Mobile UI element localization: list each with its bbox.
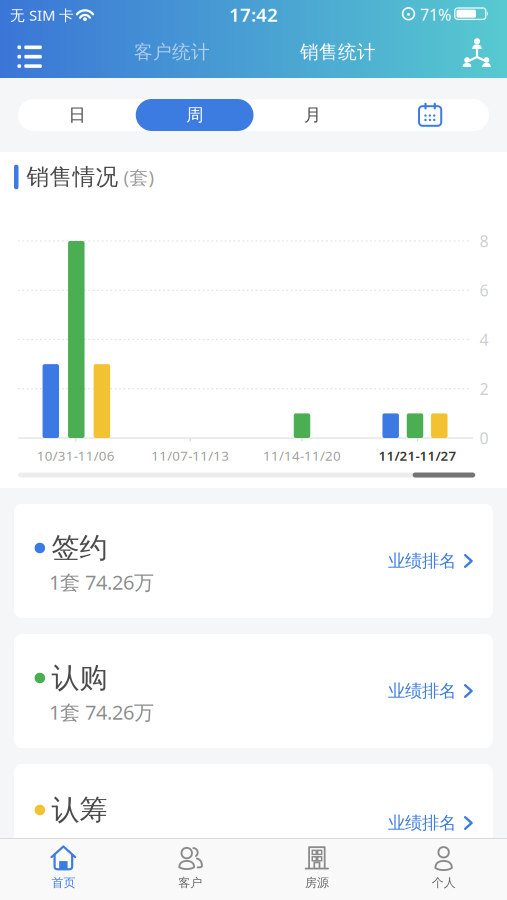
staticText: 客户统计 — [134, 40, 210, 63]
button[interactable]: 菜单 — [13, 39, 47, 71]
button[interactable]: 首页 — [0, 839, 127, 900]
button[interactable]: 选择日期 — [371, 99, 489, 131]
staticText: 周 — [186, 104, 203, 126]
button[interactable]: 业绩排名 — [313, 803, 473, 843]
staticText: 个人 — [432, 875, 456, 890]
button[interactable]: 房源 — [253, 839, 380, 900]
staticText: 1套 74.26万 — [49, 699, 154, 725]
staticText: 8 — [479, 230, 488, 252]
staticText: 17:42 — [229, 2, 278, 27]
staticText: 销售情况 — [26, 163, 118, 191]
staticText: 月 — [304, 104, 321, 126]
staticText: 业绩排名 — [388, 550, 456, 572]
button[interactable]: 月 — [253, 99, 371, 131]
button[interactable]: 业绩排名 — [313, 541, 473, 581]
staticText: 客户 — [178, 875, 202, 890]
button[interactable]: 销售统计 — [300, 40, 376, 63]
staticText: (套) — [123, 165, 154, 189]
staticText: 认筹 — [52, 793, 108, 827]
button[interactable]: 周 — [136, 99, 254, 131]
staticText: 认购 — [52, 661, 108, 695]
staticText: 11/21-11/27 — [378, 447, 456, 464]
button[interactable]: 客户 — [127, 839, 254, 900]
button[interactable]: 组织 — [461, 38, 493, 68]
staticText: 首页 — [51, 875, 75, 890]
button[interactable]: 日 — [18, 99, 136, 131]
staticText: 10/31-11/06 — [37, 447, 115, 464]
staticText: 11/07-11/13 — [151, 447, 229, 464]
button[interactable]: 客户统计 — [134, 40, 210, 63]
staticText: 4 — [479, 329, 488, 350]
staticText: 销售统计 — [300, 40, 376, 63]
staticText: 1套 74.26万 — [49, 569, 154, 595]
staticText: 业绩排名 — [388, 812, 456, 834]
staticText: 业绩排名 — [388, 680, 456, 702]
staticText: 日 — [68, 104, 85, 126]
staticText: 无 SIM 卡 — [10, 5, 74, 25]
button[interactable]: 业绩排名 — [313, 671, 473, 711]
staticText: 房源 — [305, 875, 329, 890]
staticText: 签约 — [52, 531, 108, 565]
staticText: 11/14-11/20 — [263, 447, 341, 464]
staticText: 2 — [479, 378, 488, 399]
staticText: 71% — [420, 4, 451, 25]
staticText: 6 — [479, 280, 488, 301]
staticText: 0 — [479, 427, 488, 449]
button[interactable]: 个人 — [380, 839, 507, 900]
